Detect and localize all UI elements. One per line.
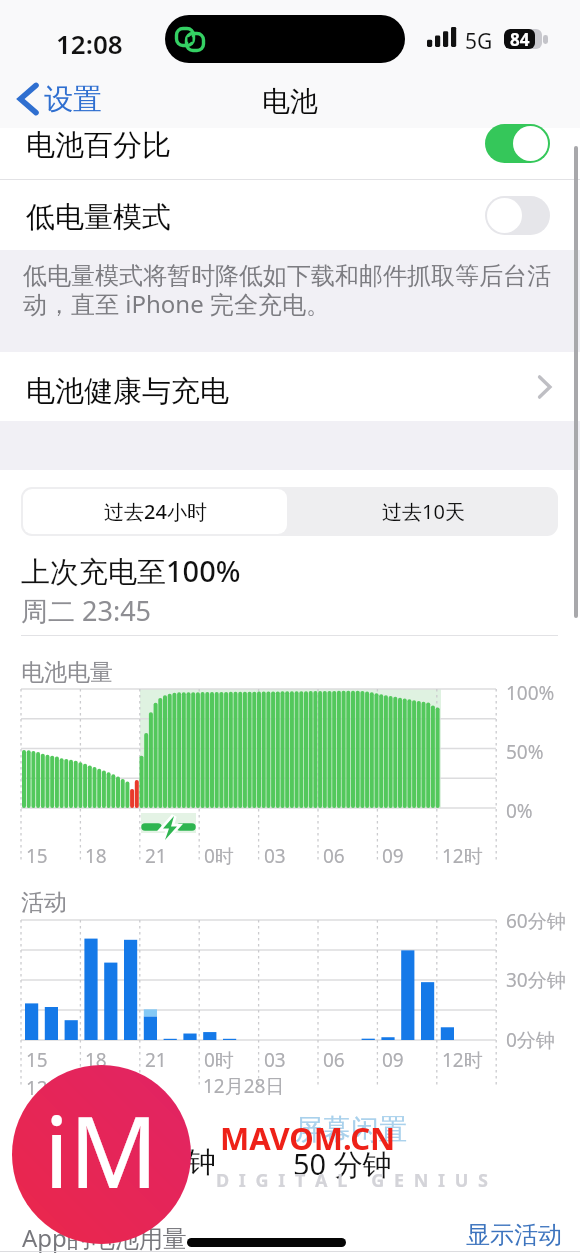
staticText: 上次充电至100% [21, 551, 241, 591]
staticText: 0分钟 [506, 1027, 555, 1053]
staticText: 06 [323, 843, 345, 869]
staticText: 0时 [204, 1047, 234, 1073]
staticText: 15 [26, 843, 48, 869]
staticText: 设置 [44, 81, 102, 118]
staticText: 12时 [442, 843, 483, 869]
button[interactable] [0, 128, 580, 179]
button[interactable]: Switch on [485, 124, 550, 163]
staticText: 18 [85, 1047, 107, 1073]
staticText: 03 [264, 1047, 286, 1073]
staticText: 过去24小时 [104, 498, 207, 525]
staticText: 低电量模式将暂时降低如下载和邮件抓取等后台活 动，直至 iPhone 完全充电。 [23, 261, 551, 320]
staticText: MAVOM.CN [220, 1117, 396, 1159]
staticText: 12时 [442, 1047, 483, 1073]
staticText: 低电量模式 [26, 199, 171, 236]
staticText: 84 [510, 29, 530, 48]
staticText: 电池 [0, 84, 580, 119]
staticText: 60分钟 [506, 908, 566, 934]
staticText: 12月28日 [203, 1073, 285, 1099]
staticText: 钟 [187, 1144, 216, 1181]
staticText: 活动 [21, 888, 67, 917]
button[interactable]: 过去24小时 [23, 489, 287, 534]
staticText: 12:08 [56, 26, 123, 61]
staticText: 09 [382, 1047, 404, 1073]
staticText: 50 分钟 [293, 1144, 392, 1184]
staticText: D I G I T A L G E N I U S [216, 1168, 491, 1193]
staticText: 21 [145, 843, 167, 869]
staticText: 18 [85, 843, 107, 869]
staticText: 屏幕闲置 [295, 1112, 407, 1147]
staticText: 50% [506, 739, 544, 765]
staticText: App的电池用量 [22, 1221, 187, 1254]
button[interactable] [0, 352, 580, 421]
staticText: 30分钟 [506, 967, 566, 993]
button[interactable] [0, 180, 580, 250]
staticText: 09 [382, 843, 404, 869]
other: Screen mirroring active [175, 27, 206, 53]
staticText: 12 [26, 1075, 48, 1101]
button[interactable]: 过去10天 [290, 489, 556, 534]
staticText: 过去10天 [382, 498, 465, 525]
button[interactable]: Switch off [485, 196, 550, 235]
staticText: iM [44, 1083, 159, 1216]
staticText: 03 [264, 843, 286, 869]
button[interactable]: 显示活动 [466, 1220, 562, 1250]
other: Open battery health [538, 375, 551, 399]
staticText: 15 [26, 1047, 48, 1073]
staticText: 电池健康与充电 [26, 373, 229, 410]
staticText: 100% [506, 680, 555, 706]
staticText: 0时 [204, 843, 234, 869]
staticText: 06 [323, 1047, 345, 1073]
staticText: 0% [506, 798, 533, 824]
staticText: 21 [145, 1047, 167, 1073]
staticText: 电池百分比 [26, 127, 171, 164]
staticText: 5G [465, 27, 493, 56]
staticText: 周二 23:45 [21, 592, 152, 629]
staticText: 电池电量 [21, 658, 113, 687]
button[interactable]: 设置 [8, 76, 112, 121]
